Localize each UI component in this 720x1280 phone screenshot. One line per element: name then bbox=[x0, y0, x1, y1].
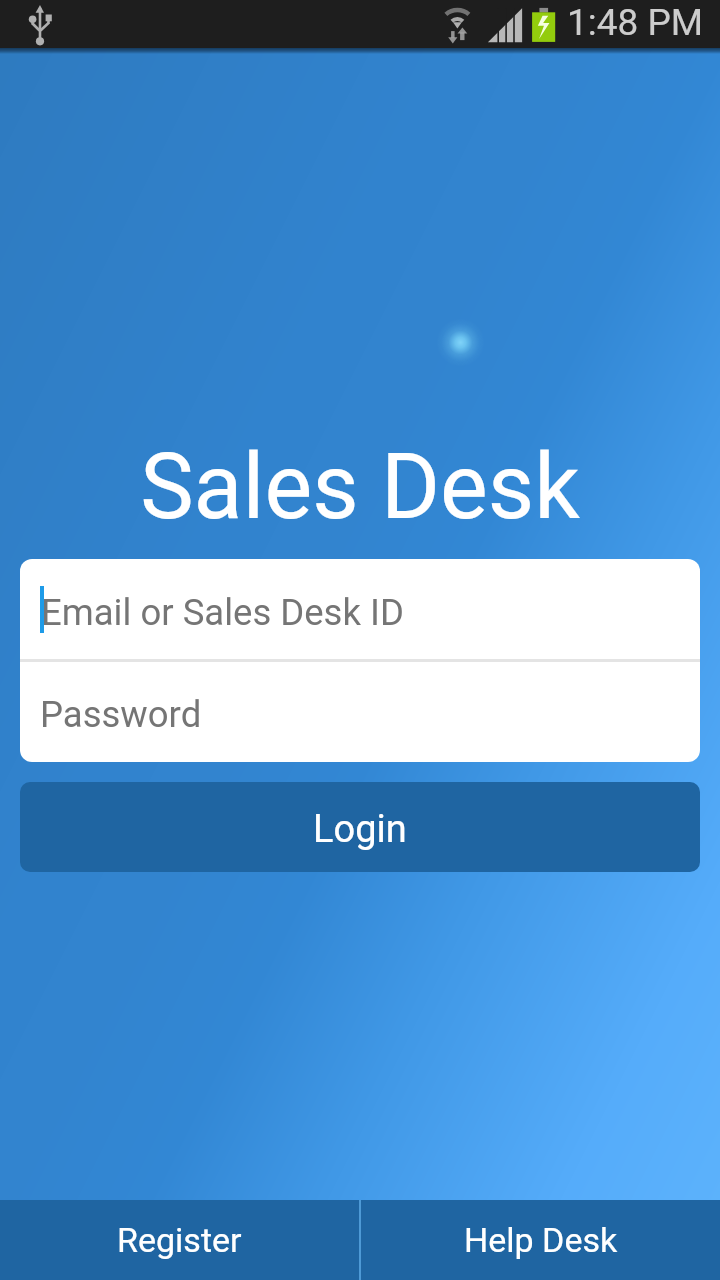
staticText: Email or Sales Desk ID bbox=[41, 591, 404, 634]
button[interactable]: Login bbox=[20, 782, 700, 872]
staticText: 1:48 PM bbox=[567, 1, 704, 44]
button[interactable]: Email or Sales Desk ID field bbox=[20, 559, 700, 659]
staticText: Register bbox=[117, 1220, 242, 1260]
button[interactable]: Help Desk bbox=[361, 1200, 720, 1280]
staticText: Sales Desk bbox=[0, 435, 720, 540]
button[interactable]: Password field bbox=[20, 662, 700, 762]
staticText: Help Desk bbox=[464, 1220, 618, 1260]
staticText: Password bbox=[40, 693, 202, 736]
staticText: Login bbox=[313, 807, 407, 852]
button[interactable]: Register bbox=[0, 1200, 359, 1280]
